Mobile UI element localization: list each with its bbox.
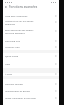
button[interactable]: Mouvements et gestes [3,87,59,94]
staticText: de votre appareils [5,31,25,34]
staticText: Bien démarrer des appels [5,28,34,31]
staticText: Appels/SMS sur les autres [5,19,34,22]
button[interactable]: Touches latérale [3,80,59,87]
button[interactable]: Bien démarrer des appels [3,26,59,35]
staticText: Quick Share [5,54,55,57]
staticText: Mode Utilisation à une main [5,96,55,99]
button[interactable]: Liste avec Mémoires [3,12,59,19]
button[interactable]: Labs [3,60,59,67]
staticText: À Pied [5,72,55,75]
button[interactable]: Mode Utilisation à une main [3,94,59,101]
button[interactable]: Android Auto [3,43,59,50]
button[interactable]: Appels/SMS sur les autres [3,17,59,26]
staticText: Mouvements et gestes [5,89,55,92]
staticText: appareils [5,22,16,25]
button[interactable]: Quick Share [3,52,59,59]
staticText: Touches latérale [5,82,55,85]
button[interactable]: Back [4,5,8,9]
button[interactable]: À Pied [3,70,59,77]
staticText: Liste avec Mémoires [5,14,55,17]
staticText: Android Auto [5,45,55,48]
staticText: Samsung SIM [5,39,55,42]
staticText: Fonctions avancées [9,5,38,9]
staticText: Labs [5,62,55,65]
button[interactable]: Samsung SIM [3,37,59,44]
